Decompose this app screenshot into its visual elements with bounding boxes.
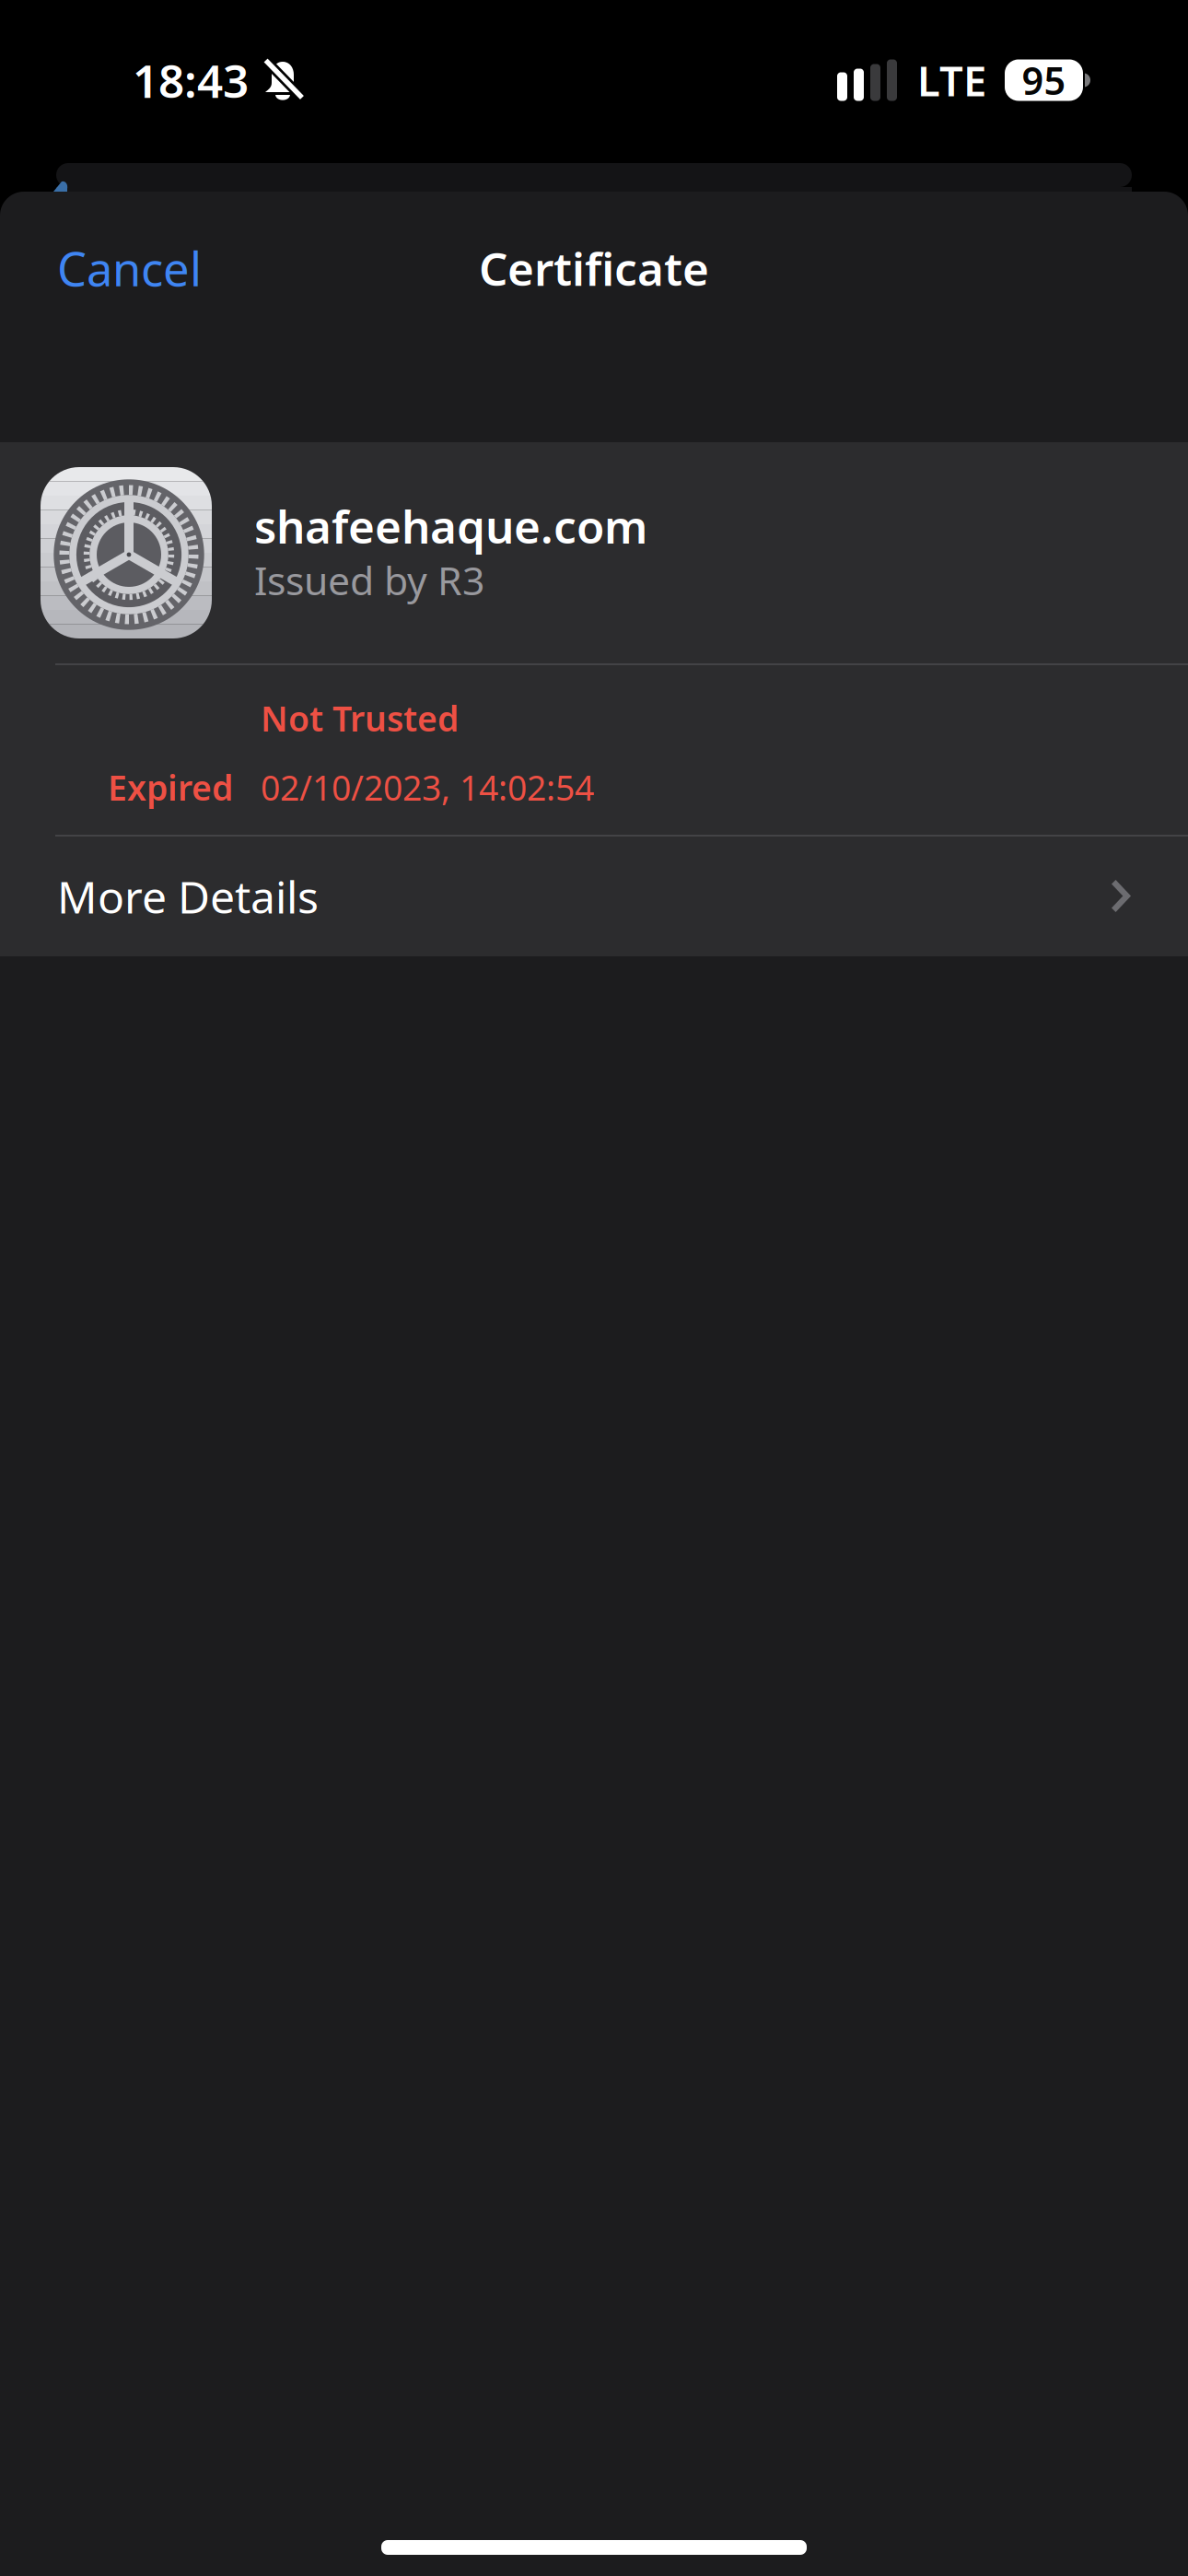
staticText: 02/10/2023, 14:02:54: [261, 764, 594, 810]
staticText: Cancel: [57, 237, 202, 299]
staticText: Certificate: [479, 238, 709, 298]
staticText: Not Trusted: [261, 695, 459, 741]
staticText: 18:43: [133, 50, 249, 110]
staticText: LTE: [917, 52, 986, 108]
button[interactable]: More Details: [0, 837, 1188, 956]
staticText: shafeehaque.com: [254, 496, 647, 556]
staticText: 95: [1022, 55, 1066, 105]
staticText: Expired: [108, 764, 233, 810]
staticText: More Details: [57, 867, 319, 926]
button[interactable]: Cancel: [0, 217, 229, 319]
staticText: Issued by R3: [254, 554, 484, 606]
